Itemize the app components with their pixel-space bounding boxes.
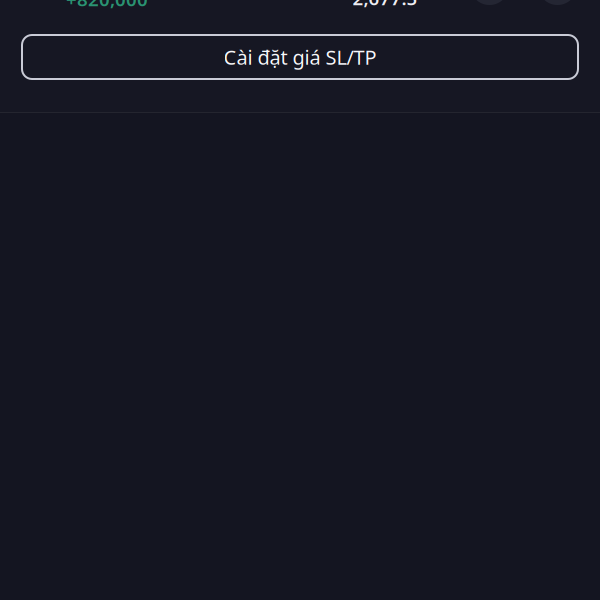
staticText: Cài đặt giá SL/TP — [223, 44, 376, 70]
button[interactable]: Chia sẻ — [470, 0, 509, 5]
staticText: 2,677.5 — [352, 0, 417, 10]
staticText: +820,000 — [66, 0, 148, 11]
button[interactable]: Cài đặt giá SL/TP — [22, 35, 578, 79]
button[interactable]: Tùy chọn — [538, 0, 577, 5]
